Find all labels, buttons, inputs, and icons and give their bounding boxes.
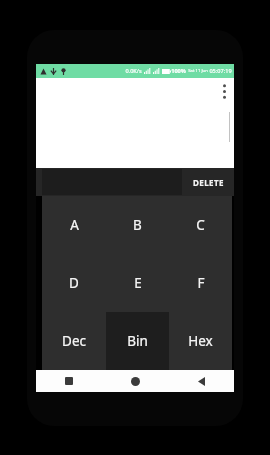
button[interactable]: Back bbox=[168, 370, 234, 392]
button[interactable]: F bbox=[169, 254, 232, 312]
staticText: 05:07:19 bbox=[209, 67, 232, 75]
staticText: DELETE bbox=[193, 177, 224, 188]
staticText: Sat 11 Jun bbox=[188, 68, 208, 74]
button[interactable]: More options bbox=[214, 78, 234, 104]
button[interactable]: A bbox=[42, 196, 106, 254]
button[interactable]: Home bbox=[102, 370, 168, 392]
staticText: E bbox=[134, 274, 142, 292]
button[interactable]: Dec bbox=[42, 312, 106, 370]
staticText: 0.0K/s bbox=[125, 67, 142, 75]
staticText: Hex bbox=[188, 332, 213, 350]
button[interactable]: Hex bbox=[169, 312, 232, 370]
button[interactable]: DELETE bbox=[182, 168, 234, 196]
staticText: D bbox=[69, 274, 79, 292]
staticText: F bbox=[197, 274, 205, 292]
staticText: B bbox=[133, 216, 142, 234]
staticText: C bbox=[196, 216, 205, 234]
button[interactable]: Recents bbox=[36, 370, 102, 392]
button[interactable]: E bbox=[106, 254, 169, 312]
staticText: Dec bbox=[62, 332, 86, 350]
button[interactable]: Bin bbox=[106, 312, 169, 370]
button[interactable]: C bbox=[169, 196, 232, 254]
staticText: Bin bbox=[127, 332, 148, 350]
staticText: A bbox=[70, 216, 79, 234]
button[interactable]: D bbox=[42, 254, 106, 312]
staticText: 100% bbox=[171, 67, 186, 75]
button[interactable]: B bbox=[106, 196, 169, 254]
